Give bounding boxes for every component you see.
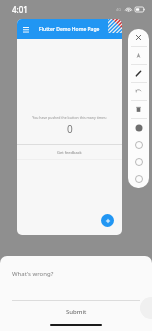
- staticText: 4:01: [12, 4, 28, 15]
- staticText: What's wrong?: [12, 270, 54, 278]
- button[interactable]: Undo: [128, 83, 149, 100]
- button[interactable]: Colour 1: [128, 136, 149, 153]
- staticText: 4G: [116, 7, 122, 12]
- button[interactable]: Delete: [128, 101, 149, 118]
- button[interactable]: Increment: [101, 214, 114, 227]
- staticText: You have pushed the button this many tim…: [32, 115, 107, 120]
- staticText: Flutter Demo Home Page: [39, 26, 100, 33]
- staticText: 0: [67, 122, 73, 136]
- button[interactable]: Submit: [0, 304, 152, 320]
- button[interactable]: Pointer: [128, 47, 149, 64]
- button[interactable]: More: [140, 297, 152, 319]
- button[interactable]: Menu: [21, 25, 30, 34]
- button[interactable]: Colour 3: [128, 170, 149, 187]
- button[interactable]: Close: [128, 29, 149, 46]
- button[interactable]: Colour 2: [128, 153, 149, 170]
- staticText: Submit: [66, 308, 87, 316]
- button[interactable]: Black: [128, 119, 149, 136]
- button[interactable]: Get feedback: [17, 150, 122, 155]
- staticText: Get feedback: [57, 150, 82, 155]
- button[interactable]: Draw: [128, 65, 149, 82]
